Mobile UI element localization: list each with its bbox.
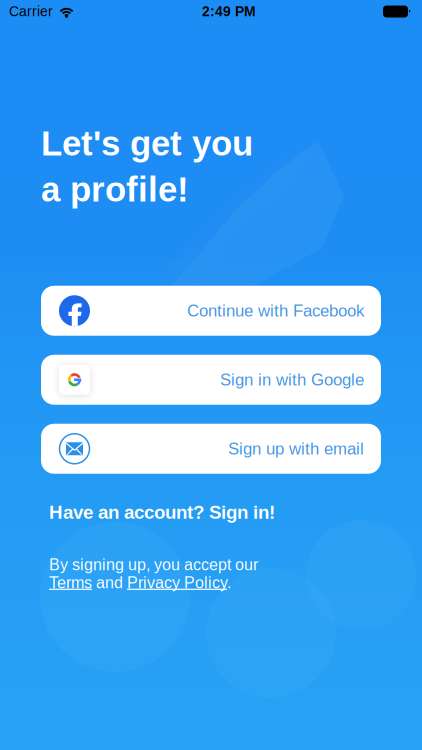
button[interactable]: Sign up with email [41,424,381,474]
button[interactable]: Have an account? Sign in! [0,502,422,523]
staticText: 2:49 PM [202,4,256,19]
staticText: Terms and Privacy Policy. [49,574,231,591]
staticText: Have an account? Sign in! [49,502,275,523]
staticText: Let's get you [41,124,253,163]
button[interactable]: Continue with Facebook [41,286,381,336]
staticText: Continue with Facebook [187,301,364,320]
staticText: By signing up, you accept our [49,556,258,574]
staticText: a profile! [41,170,189,209]
staticText: Sign up with email [228,439,364,458]
staticText: Carrier [9,4,53,19]
button[interactable]: Sign in with Google [41,355,381,405]
staticText: Sign in with Google [220,370,364,389]
